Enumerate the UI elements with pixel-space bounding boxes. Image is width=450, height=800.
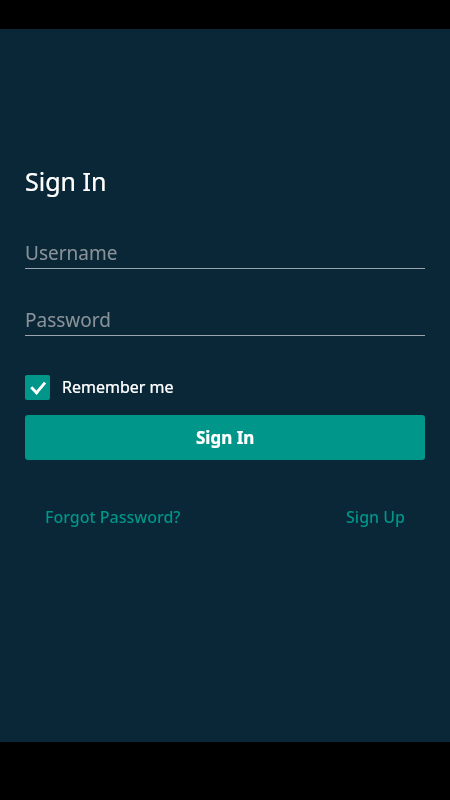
button[interactable]: Sign Up [346,502,405,532]
button[interactable]: Username [25,237,425,269]
staticText: Sign Up [346,506,405,528]
button[interactable]: Forgot Password? [45,502,181,532]
staticText: Sign In [25,164,107,198]
button[interactable]: Remember me [25,373,174,401]
button[interactable]: Sign In [25,415,425,460]
staticText: Sign In [196,426,255,449]
staticText: Password [25,307,111,333]
staticText: Forgot Password? [45,506,181,528]
staticText: Username [25,240,118,266]
staticText: Remember me [62,376,174,398]
button[interactable]: Password [25,304,425,336]
